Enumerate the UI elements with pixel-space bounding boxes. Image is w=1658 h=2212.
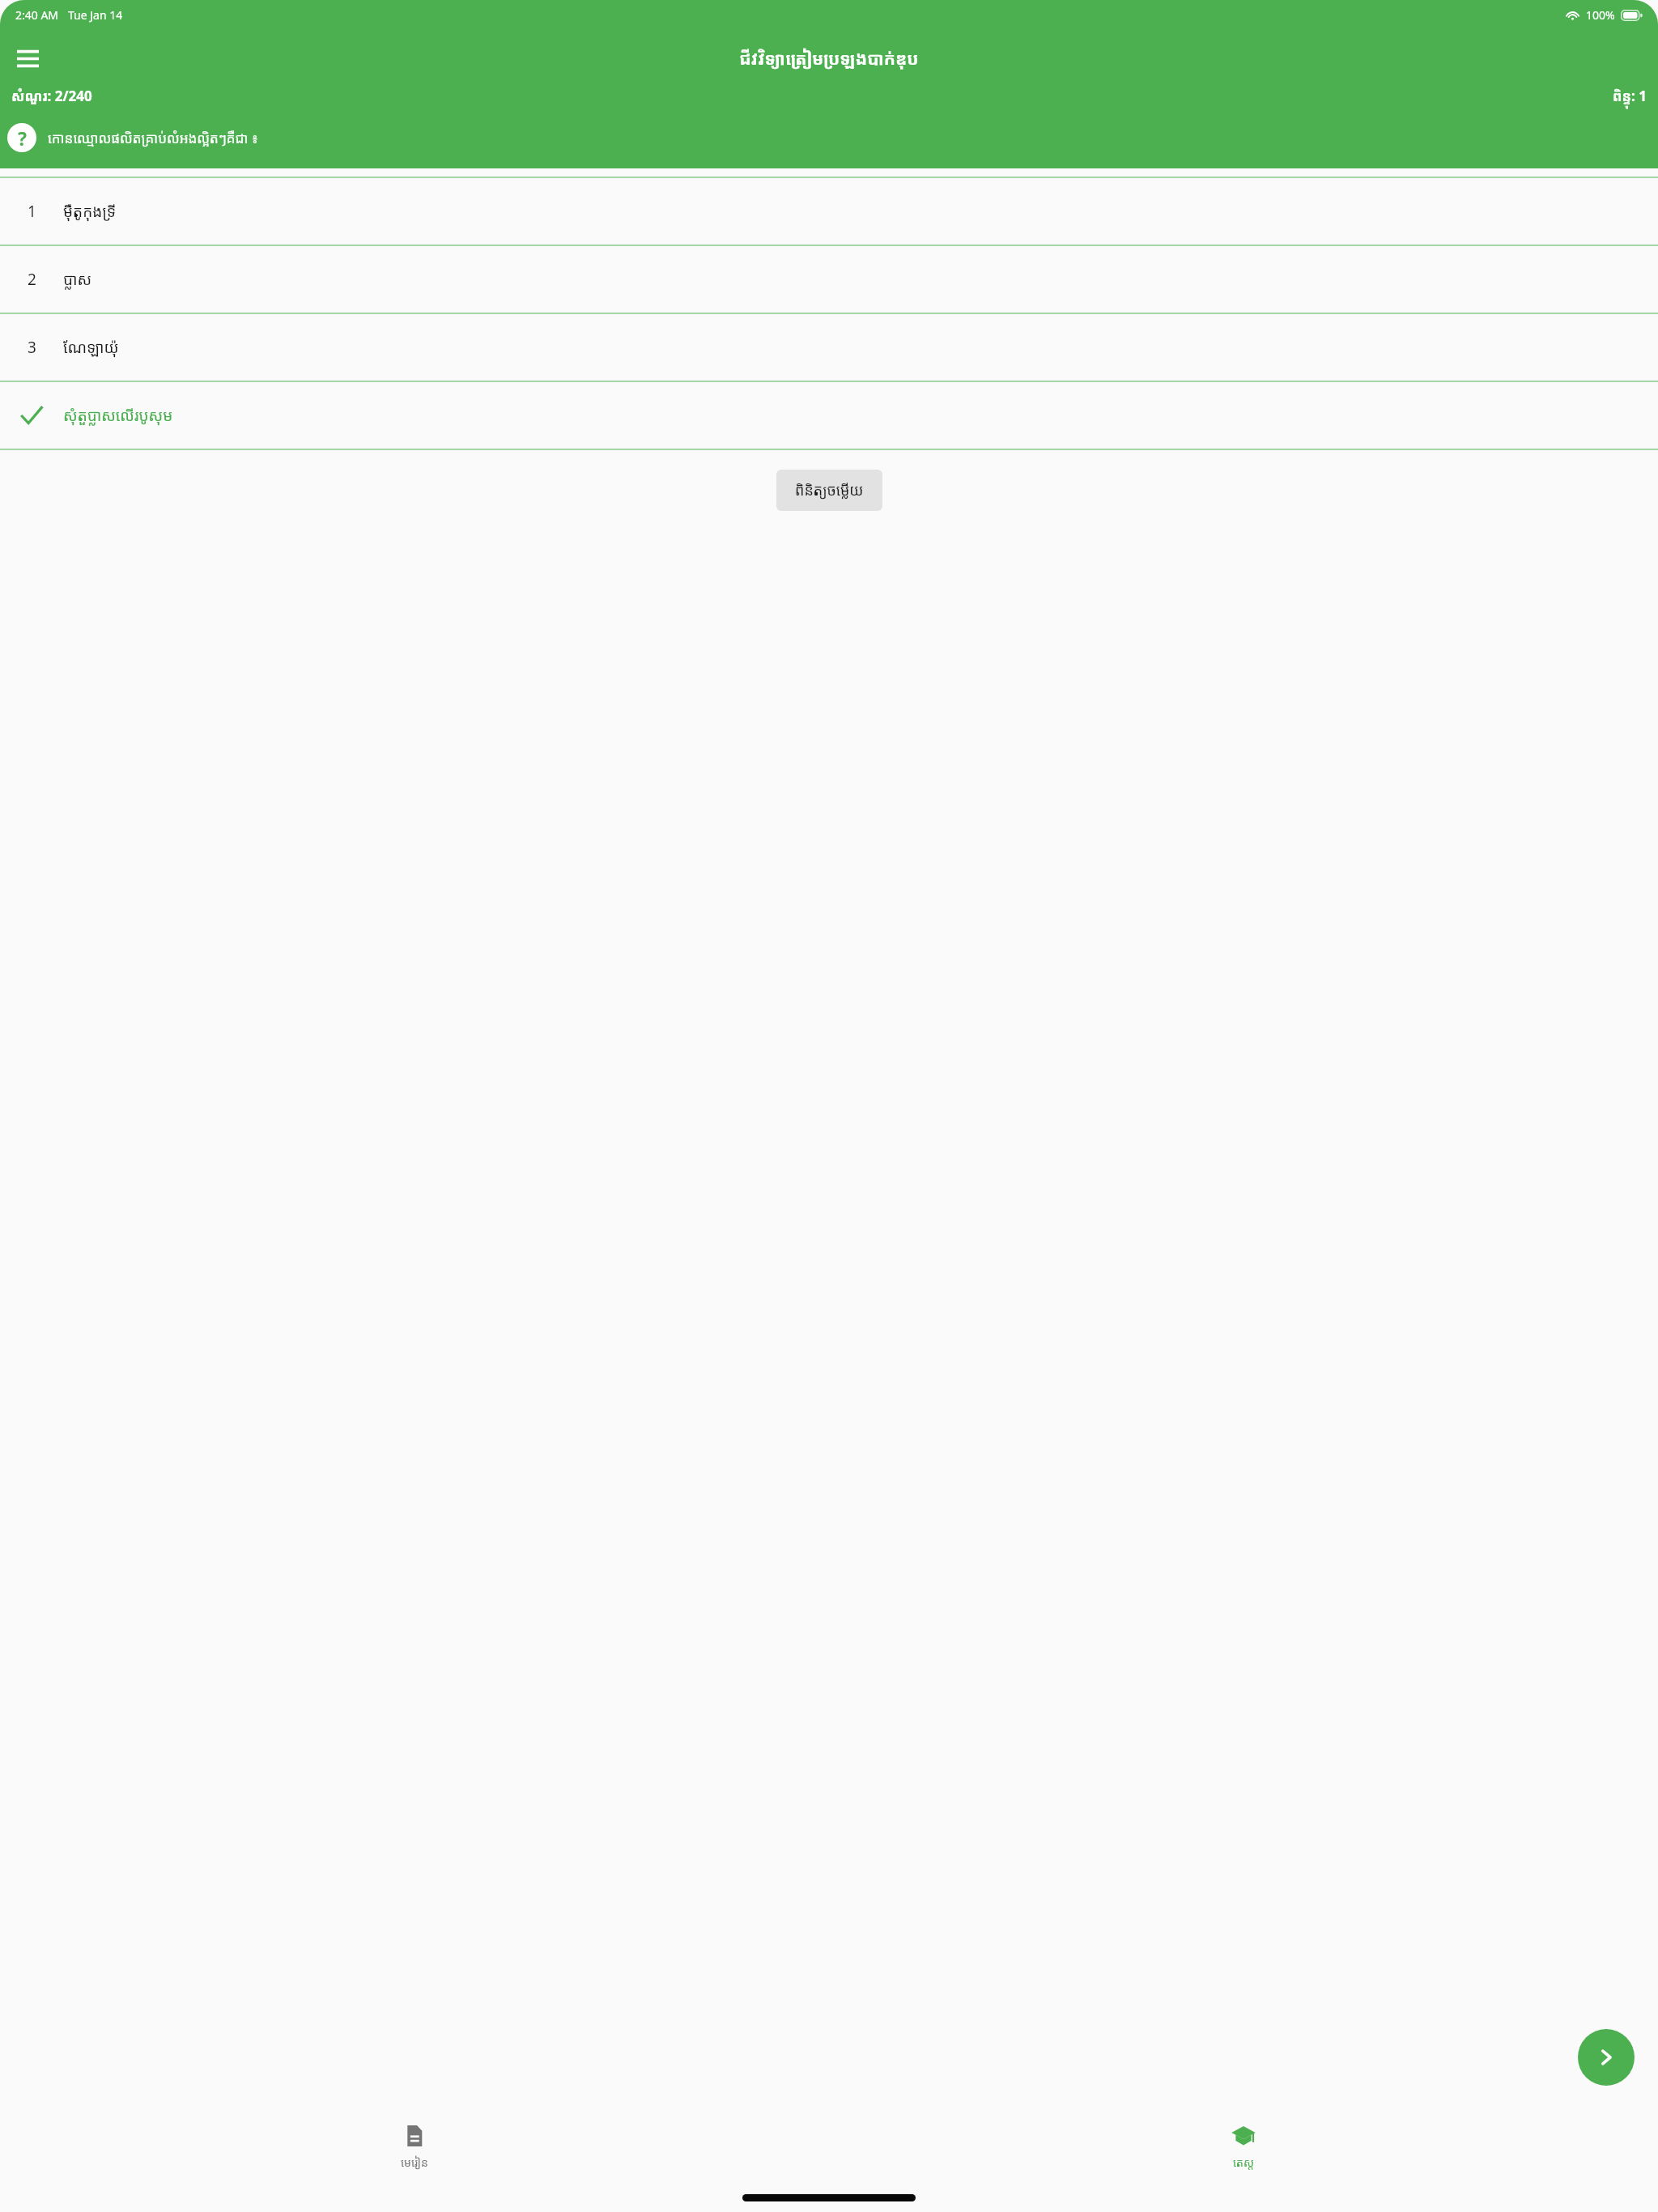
button[interactable]: Question help	[7, 123, 36, 152]
button[interactable]: តេស្ត	[1209, 2121, 1278, 2173]
staticText: 100%	[1586, 7, 1615, 23]
staticText: ម៉ឺតូកុងទ្រី	[63, 201, 117, 222]
button[interactable]: 3	[0, 314, 1658, 381]
staticText: 3	[28, 337, 36, 358]
staticText: មេរៀន	[401, 2155, 428, 2170]
staticText: ពិនិត្យចម្លើយ	[795, 480, 864, 500]
staticText: 1	[28, 201, 36, 222]
button[interactable]: Open navigation menu	[5, 36, 50, 81]
button[interactable]: ពិនិត្យចម្លើយ	[776, 470, 882, 511]
staticText: តេស្ត	[1233, 2155, 1254, 2170]
staticText: សំណួរ: 2/240	[11, 87, 92, 105]
staticText: កោនឈ្មោលផលិតគ្រាប់លំអងល្អិតៗគឺជា ៖	[48, 129, 258, 147]
button[interactable]: 1	[0, 178, 1658, 245]
staticText: Tue Jan 14	[68, 7, 123, 23]
staticText: 2	[28, 269, 36, 290]
staticText: ពិន្ទុ: 1	[1613, 87, 1647, 105]
button[interactable]: 2	[0, 246, 1658, 313]
button[interactable]: Next question	[1578, 2029, 1635, 2086]
button[interactable]: សុំតួប្លាសលើរបូសុម	[0, 382, 1658, 449]
button[interactable]: មេរៀន	[378, 2121, 451, 2173]
staticText: ប្លាស	[63, 269, 92, 290]
staticText: 2:40 AM	[15, 7, 59, 23]
staticText: ជីវវិទ្យាត្រៀមប្រឡងបាក់ឌុប	[739, 47, 919, 70]
staticText: ណែឡាយ៉ុ	[63, 337, 119, 358]
staticText: ?	[18, 125, 27, 151]
staticText: សុំតួប្លាសលើរបូសុម	[63, 405, 173, 426]
